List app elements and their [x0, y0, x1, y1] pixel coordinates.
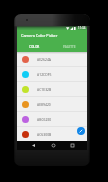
staticText: #BC62E0 — [37, 117, 52, 122]
button[interactable]: #E89420 — [17, 97, 87, 112]
button[interactable]: #E2624A — [17, 52, 87, 67]
button[interactable]: #C1E32B — [17, 82, 87, 97]
button[interactable]: PALETTE — [52, 41, 87, 52]
staticText: Camera Color Picker — [21, 33, 58, 38]
staticText: #E2624A — [37, 57, 51, 62]
button[interactable]: #C6300B — [17, 127, 87, 141]
button[interactable]: Edit — [77, 127, 85, 135]
button[interactable]: Home — [50, 141, 57, 150]
staticText: #C6300B — [37, 132, 52, 137]
button[interactable]: Recents — [69, 141, 76, 150]
staticText: PALETTE — [63, 45, 76, 49]
staticText: #E89420 — [37, 102, 51, 107]
button[interactable]: #BC62E0 — [17, 112, 87, 127]
staticText: COLOR — [29, 45, 40, 49]
staticText: 11:34 — [78, 26, 86, 30]
button[interactable]: Camera Color Picker — [17, 30, 87, 41]
staticText: #C1E32B — [37, 87, 52, 92]
staticText: #12CDF5 — [37, 72, 52, 77]
button[interactable]: #12CDF5 — [17, 67, 87, 82]
button[interactable]: Back — [30, 141, 37, 150]
button[interactable]: COLOR — [17, 41, 52, 52]
